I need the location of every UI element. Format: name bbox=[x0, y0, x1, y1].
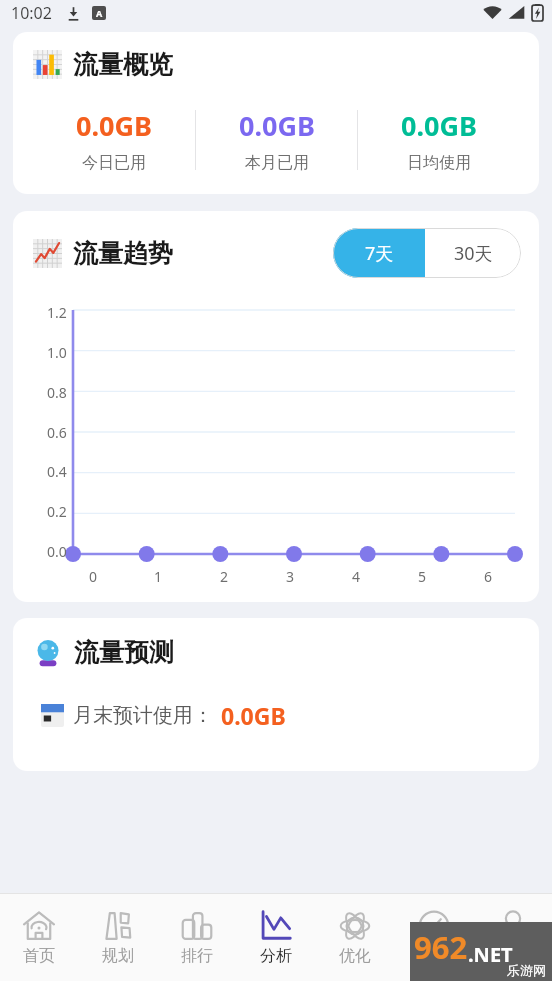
staticText: 30天 bbox=[454, 241, 493, 266]
staticText: 月末预计使用： bbox=[73, 703, 213, 728]
staticText: 0.8 bbox=[47, 383, 67, 402]
button[interactable]: 0.0GB bbox=[33, 100, 195, 180]
button[interactable]: 分析 bbox=[236, 893, 315, 981]
staticText: 6 bbox=[484, 567, 493, 586]
staticText: 规划 bbox=[102, 946, 134, 966]
staticText: 4 bbox=[352, 567, 361, 586]
staticText: 0.0 bbox=[47, 542, 67, 561]
staticText: 7天 bbox=[365, 241, 394, 266]
staticText: 0.6 bbox=[47, 423, 67, 442]
other: 我的 bbox=[496, 909, 530, 943]
other: 分析 bbox=[259, 909, 293, 943]
staticText: 今日已用 bbox=[82, 153, 146, 173]
other: 监控 bbox=[417, 909, 451, 943]
staticText: 流量趋势 bbox=[73, 238, 173, 269]
staticText: 5 bbox=[418, 567, 427, 586]
button[interactable]: 30天 bbox=[425, 228, 521, 278]
staticText: 0.2 bbox=[47, 502, 67, 521]
staticText: 我的 bbox=[497, 946, 529, 966]
staticText: 0.4 bbox=[47, 462, 67, 481]
staticText: 3 bbox=[286, 567, 295, 586]
staticText: 优化 bbox=[339, 946, 371, 966]
staticText: 0.0GB bbox=[401, 107, 477, 144]
button[interactable]: 监控 bbox=[394, 893, 473, 981]
button[interactable]: 我的 bbox=[473, 893, 552, 981]
staticText: 流量概览 bbox=[73, 49, 173, 80]
staticText: 0.0GB bbox=[76, 107, 152, 144]
staticText: 排行 bbox=[181, 946, 213, 966]
button[interactable]: 规划 bbox=[78, 893, 157, 981]
button[interactable]: 排行 bbox=[157, 893, 236, 981]
staticText: 流量预测 bbox=[74, 637, 174, 668]
button[interactable]: 7天 bbox=[333, 228, 425, 278]
staticText: .NET bbox=[468, 941, 513, 968]
staticText: 1 bbox=[154, 567, 163, 586]
other: 排行 bbox=[180, 909, 214, 943]
button[interactable]: 流量概览 bbox=[13, 32, 539, 194]
staticText: 0.0GB bbox=[221, 700, 286, 731]
staticText: 2 bbox=[220, 567, 229, 586]
staticText: 0.0GB bbox=[239, 107, 315, 144]
other: 规划 bbox=[101, 909, 135, 943]
button[interactable]: 首页 bbox=[0, 893, 78, 981]
staticText: A bbox=[96, 7, 103, 19]
staticText: 1.2 bbox=[47, 303, 67, 322]
staticText: 0 bbox=[89, 567, 98, 586]
staticText: 962 bbox=[414, 926, 468, 968]
staticText: 1.0 bbox=[47, 343, 67, 362]
staticText: 乐游网 bbox=[507, 962, 546, 978]
staticText: 10:02 bbox=[11, 2, 52, 24]
staticText: 日均使用 bbox=[407, 153, 471, 173]
button[interactable]: 0.0GB bbox=[196, 100, 357, 180]
staticText: 分析 bbox=[260, 946, 292, 966]
other: 首页 bbox=[22, 909, 56, 943]
button[interactable]: 优化 bbox=[315, 893, 394, 981]
button[interactable]: 0.0GB bbox=[358, 100, 519, 180]
other: 优化 bbox=[338, 909, 372, 943]
staticText: 首页 bbox=[23, 946, 55, 966]
staticText: 本月已用 bbox=[245, 153, 309, 173]
staticText: 监控 bbox=[418, 946, 450, 966]
button[interactable]: 流量预测 bbox=[13, 618, 539, 771]
